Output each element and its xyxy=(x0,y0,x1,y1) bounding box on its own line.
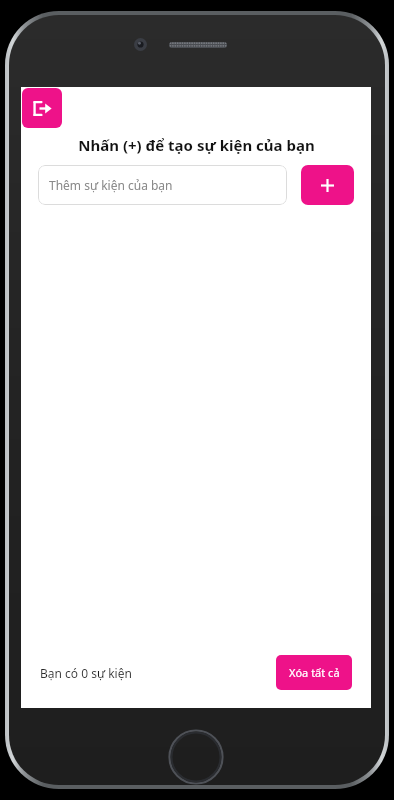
button[interactable]: Đăng xuất xyxy=(22,88,62,128)
staticText: Nhấn (+) để tạo sự kiện của bạn xyxy=(78,135,315,155)
button[interactable]: Thêm xyxy=(301,165,354,205)
staticText: Xóa tất cả xyxy=(289,665,340,680)
staticText: Bạn có 0 sự kiện xyxy=(40,665,132,681)
button[interactable]: Xóa tất cả xyxy=(276,655,352,690)
button[interactable]: Thêm sự kiện của bạn xyxy=(49,165,276,205)
staticText: Thêm sự kiện của bạn xyxy=(49,177,173,193)
